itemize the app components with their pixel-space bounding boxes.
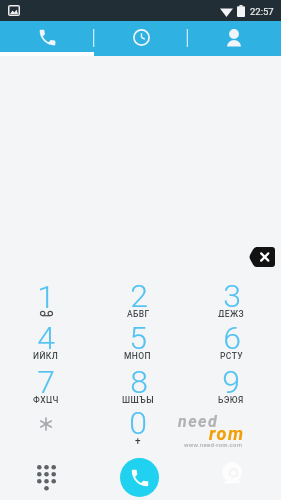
button[interactable]: 9 xyxy=(186,363,276,409)
staticText: 6 xyxy=(223,319,241,357)
staticText: ФХЦЧ xyxy=(33,395,59,403)
button[interactable]: 4 xyxy=(1,319,91,365)
staticText: 8 xyxy=(130,363,148,401)
staticText: 1 xyxy=(37,278,55,316)
staticText: need xyxy=(178,412,219,431)
button[interactable]: 5 xyxy=(93,319,183,365)
staticText: МНОП xyxy=(124,351,152,359)
button[interactable] xyxy=(120,458,159,497)
button[interactable]: 2 xyxy=(93,277,183,323)
button[interactable] xyxy=(0,21,94,56)
staticText: 9 xyxy=(222,363,240,401)
staticText: 5 xyxy=(129,319,147,357)
staticText: 2 xyxy=(130,277,148,315)
button[interactable] xyxy=(28,459,64,495)
button[interactable] xyxy=(246,245,278,269)
button[interactable]: 3 xyxy=(186,277,276,323)
button[interactable] xyxy=(94,21,188,56)
staticText: ДЕЖЗ xyxy=(218,309,245,317)
staticText: 0 xyxy=(129,404,147,442)
button[interactable] xyxy=(187,21,281,56)
staticText: ЬЭЮЯ xyxy=(218,395,244,403)
button[interactable] xyxy=(1,402,91,446)
staticText: 7 xyxy=(37,363,55,401)
staticText: 3 xyxy=(223,277,241,315)
button[interactable]: 6 xyxy=(186,319,276,365)
staticText: + xyxy=(135,436,141,448)
button[interactable]: 8 xyxy=(93,363,183,409)
button[interactable]: 0 xyxy=(93,404,183,456)
staticText: www.need-rom.com xyxy=(184,441,243,448)
staticText: ШЩЪЫ xyxy=(122,395,155,403)
button[interactable]: 7 xyxy=(1,363,91,409)
staticText: 22:57 xyxy=(250,6,274,17)
staticText: 4 xyxy=(37,319,55,357)
staticText: ИЙКЛ xyxy=(33,351,59,359)
staticText: РСТУ xyxy=(220,351,243,359)
button[interactable]: 1 xyxy=(1,277,91,323)
staticText: rom xyxy=(209,423,245,444)
staticText: АБВГ xyxy=(127,309,150,317)
